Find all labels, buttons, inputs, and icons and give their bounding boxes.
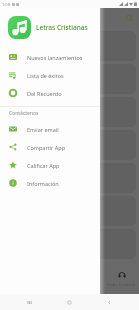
button[interactable]: Back	[105, 298, 114, 307]
staticText: Radio Cristiana	[107, 282, 136, 287]
staticText: 1:08	[2, 2, 10, 7]
staticText: Compartir App	[27, 144, 66, 151]
button[interactable]: Información	[0, 174, 100, 192]
button[interactable]	[3, 64, 136, 94]
button[interactable]: Letras Cristianas	[8, 9, 100, 45]
staticText: Lista de éxitos	[27, 72, 64, 79]
button[interactable]	[3, 97, 136, 127]
staticText: Enviar email	[27, 126, 59, 133]
button[interactable]	[3, 163, 136, 193]
staticText: Radio Cristiana	[72, 282, 101, 287]
button[interactable]	[3, 196, 136, 226]
button[interactable]: Home	[65, 298, 74, 307]
staticText: Nuevos lanzamientos	[27, 54, 83, 61]
button[interactable]	[3, 130, 136, 160]
button[interactable]: Recent apps	[25, 298, 34, 307]
button[interactable]	[3, 229, 136, 259]
staticText: Contáctenos	[9, 110, 39, 117]
button[interactable]: Del Recuerdo	[0, 84, 100, 102]
staticText: Del Recuerdo	[27, 90, 62, 97]
button[interactable]	[3, 31, 136, 61]
button[interactable]: Nuevos lanzamientos	[0, 48, 100, 66]
staticText: Calificar App	[27, 162, 60, 169]
button[interactable]: Search	[125, 14, 134, 23]
button[interactable]: Radio Cristiana	[69, 262, 104, 294]
button[interactable]: Calificar App	[0, 156, 100, 174]
staticText: Letras Cristianas	[36, 23, 88, 32]
button[interactable]: Compartir App	[0, 138, 100, 156]
staticText: Información	[27, 180, 59, 187]
button[interactable]: Radio Cristiana	[104, 262, 139, 294]
button[interactable]: Enviar email	[0, 120, 100, 138]
button[interactable]: Lista de éxitos	[0, 66, 100, 84]
